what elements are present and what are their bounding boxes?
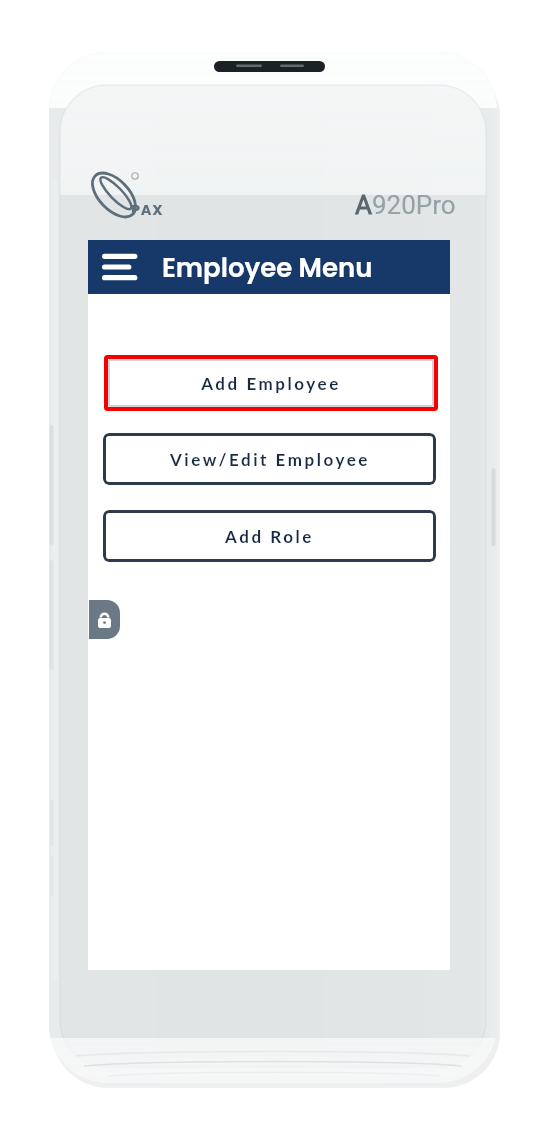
staticText: Add Employee xyxy=(201,373,341,393)
button[interactable]: View/Edit Employee xyxy=(103,433,436,485)
staticText: View/Edit Employee xyxy=(170,449,370,469)
button[interactable]: Lock xyxy=(89,600,120,639)
button[interactable]: Add Employee xyxy=(108,359,434,407)
staticText: 920Pro xyxy=(372,190,456,220)
staticText: Add Role xyxy=(225,526,314,546)
button[interactable]: Open navigation menu xyxy=(102,253,138,281)
staticText: PAX xyxy=(131,200,164,220)
button[interactable]: Add Role xyxy=(103,510,436,562)
staticText: Employee Menu xyxy=(162,250,373,286)
staticText: A xyxy=(355,190,372,220)
